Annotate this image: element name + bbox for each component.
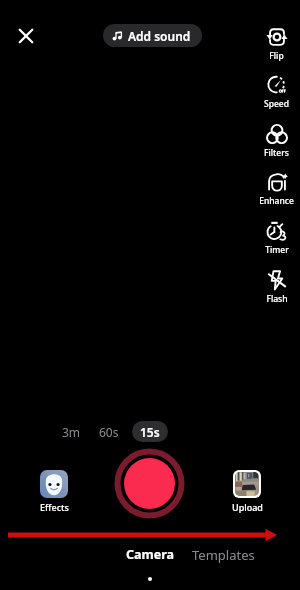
staticText: Templates	[192, 546, 255, 564]
staticText: Add sound	[128, 28, 191, 44]
staticText: 60s	[99, 424, 119, 440]
button[interactable]: Record	[114, 448, 185, 519]
staticText: Flash	[266, 293, 288, 305]
staticText: 15s	[140, 424, 160, 440]
button[interactable]: 15s	[132, 421, 168, 442]
button[interactable]: Add sound	[103, 24, 202, 47]
staticText: Effects	[40, 501, 69, 513]
button[interactable]: Effects	[30, 470, 78, 513]
staticText: Timer	[265, 244, 289, 256]
button[interactable]: Filters	[252, 123, 300, 159]
button[interactable]: Enhance	[252, 171, 300, 207]
button[interactable]: Speed	[252, 74, 300, 110]
button[interactable]: Timer	[252, 220, 300, 256]
button[interactable]: Flash	[252, 269, 300, 305]
staticText: Enhance	[259, 195, 294, 207]
button[interactable]: Camera	[126, 546, 174, 581]
staticText: Speed	[264, 98, 289, 110]
button[interactable]: 3m	[54, 421, 89, 442]
staticText: Camera	[126, 546, 174, 563]
staticText: Upload	[232, 501, 263, 513]
button[interactable]: Flip	[252, 26, 300, 62]
staticText: Flip	[269, 50, 284, 62]
button[interactable]: Templates	[190, 546, 257, 564]
button[interactable]: Upload	[223, 470, 271, 513]
staticText: Filters	[264, 147, 289, 159]
staticText: 3m	[62, 424, 81, 440]
button[interactable]: 60s	[91, 421, 127, 442]
button[interactable]: Close	[12, 22, 40, 50]
